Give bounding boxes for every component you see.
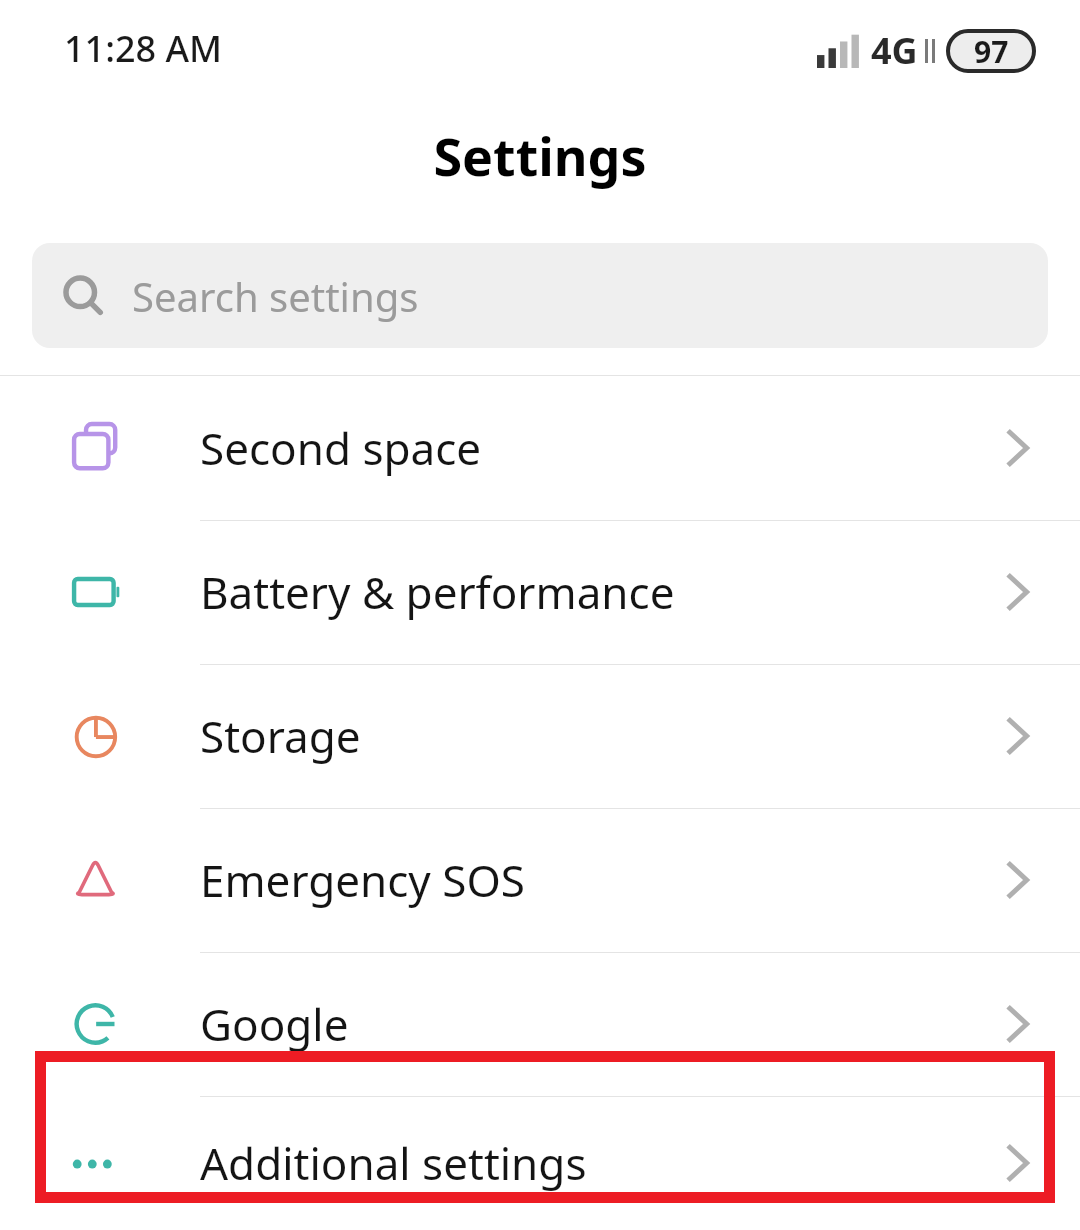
staticText: Battery & performance	[200, 562, 675, 622]
staticText: 11:28 AM	[64, 24, 223, 73]
button[interactable]: Battery & performance	[0, 520, 1080, 664]
staticText: Google	[200, 994, 349, 1054]
staticText: Emergency SOS	[200, 850, 525, 910]
staticText: Settings	[433, 120, 647, 191]
button[interactable]: Search settings	[32, 243, 1048, 348]
button[interactable]: Storage	[0, 664, 1080, 808]
staticText: Second space	[200, 418, 482, 478]
staticText: 4G	[871, 26, 918, 75]
staticText: Storage	[200, 706, 361, 766]
staticText: Additional settings	[200, 1133, 587, 1193]
button[interactable]: Google	[0, 952, 1080, 1096]
staticText: 97	[974, 31, 1009, 71]
button[interactable]: Second space	[0, 376, 1080, 520]
button[interactable]: Additional settings	[0, 1096, 1080, 1230]
button[interactable]: Emergency SOS	[0, 808, 1080, 952]
staticText: Search settings	[132, 269, 419, 323]
